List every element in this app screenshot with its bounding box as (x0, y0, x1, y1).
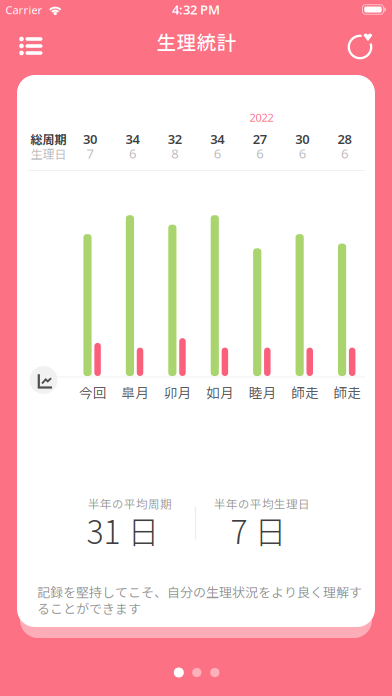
staticText: 生理統計 (156, 27, 236, 56)
staticText: 如月 (206, 382, 234, 402)
staticText: 32 (168, 130, 182, 148)
staticText: 4:32 PM (172, 1, 220, 18)
staticText: 27 (253, 130, 267, 148)
staticText: 34 (210, 130, 224, 148)
staticText: 6 (299, 145, 306, 162)
staticText: 31 日 (86, 507, 159, 553)
staticText: Carrier (5, 3, 42, 17)
staticText: 8 (171, 145, 178, 162)
staticText: 師走 (334, 382, 362, 402)
staticText: 半年の平均生理日 (214, 495, 310, 512)
staticText: 6 (256, 145, 263, 162)
staticText: 2022 (249, 110, 273, 125)
staticText: 30 (295, 130, 309, 148)
staticText: 7 (86, 145, 93, 162)
staticText: 今回 (79, 382, 107, 402)
staticText: 28 (338, 130, 352, 148)
staticText: 6 (214, 145, 221, 162)
staticText: 卯月 (164, 382, 192, 402)
staticText: ることができます (37, 599, 141, 617)
staticText: 記録を堅持してこそ、自分の生理状況をより良く理解す (37, 582, 362, 601)
staticText: 6 (341, 145, 348, 162)
staticText: 30 (83, 130, 97, 148)
staticText: 7 日 (230, 507, 286, 553)
staticText: 皐月 (121, 382, 149, 402)
staticText: 睦月 (249, 382, 277, 402)
button[interactable] (29, 366, 57, 394)
staticText: 師走 (291, 382, 319, 402)
staticText: 総周期 (30, 130, 66, 148)
staticText: 6 (129, 145, 136, 162)
staticText: 生理日 (30, 145, 66, 162)
button[interactable] (346, 31, 376, 59)
staticText: 半年の平均周期 (88, 495, 172, 512)
staticText: 34 (125, 130, 139, 148)
button[interactable] (16, 33, 46, 59)
